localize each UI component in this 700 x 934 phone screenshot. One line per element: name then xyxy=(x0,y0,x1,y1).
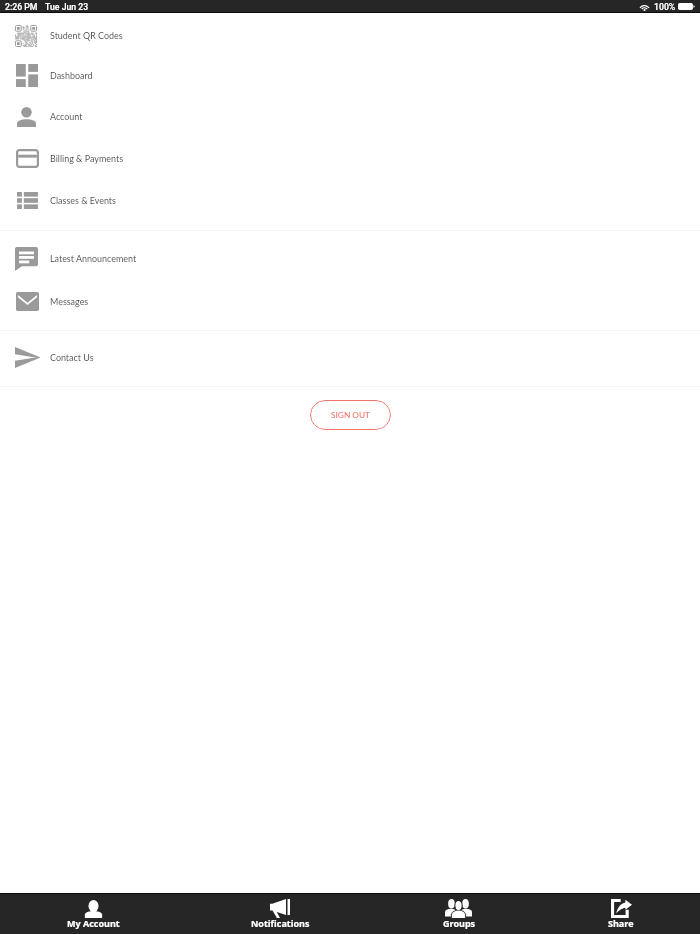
staticText: Notifications xyxy=(251,917,310,929)
staticText: 100% xyxy=(654,2,676,12)
button[interactable]: SIGN OUT xyxy=(310,400,391,430)
staticText: Dashboard xyxy=(50,70,93,81)
button[interactable]: Contact Us xyxy=(0,337,700,378)
staticText: My Account xyxy=(67,917,120,929)
staticText: Student QR Codes xyxy=(50,30,123,41)
staticText: Billing & Payments xyxy=(50,153,123,164)
button[interactable]: Classes & Events xyxy=(0,180,700,221)
staticText: Messages xyxy=(50,296,89,307)
button[interactable]: Messages xyxy=(0,281,700,322)
staticText: Contact Us xyxy=(50,352,94,363)
button[interactable]: Latest Announcement xyxy=(0,238,700,279)
button[interactable]: Groups xyxy=(374,893,543,934)
staticText: 2:26 PM xyxy=(5,2,38,12)
button[interactable]: Account xyxy=(0,96,700,137)
other: Battery full xyxy=(678,3,695,10)
button[interactable]: Billing & Payments xyxy=(0,138,700,179)
staticText: SIGN OUT xyxy=(331,410,370,420)
staticText: Classes & Events xyxy=(50,195,116,206)
button[interactable]: My Account xyxy=(0,893,186,934)
button[interactable]: Share xyxy=(543,893,700,934)
button[interactable]: Student QR Codes xyxy=(0,15,700,56)
other: Wi-Fi xyxy=(639,3,650,11)
staticText: Latest Announcement xyxy=(50,253,137,264)
staticText: Account xyxy=(50,111,83,122)
button[interactable]: Dashboard xyxy=(0,55,700,96)
staticText: Share xyxy=(608,917,634,929)
button[interactable]: Notifications xyxy=(186,893,374,934)
staticText: Groups xyxy=(443,917,476,929)
staticText: Tue Jun 23 xyxy=(45,2,89,12)
